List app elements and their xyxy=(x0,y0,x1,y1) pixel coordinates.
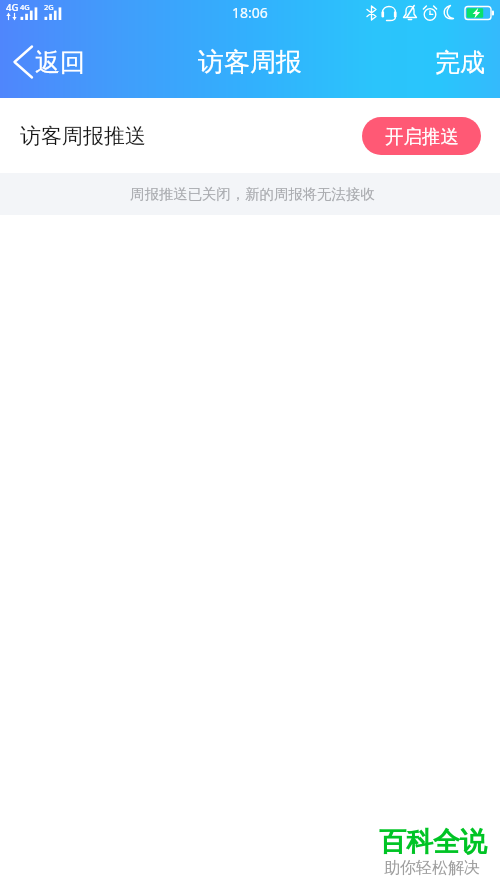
staticText: 2G xyxy=(44,2,54,12)
staticText: 访客周报推送 xyxy=(20,123,146,149)
button[interactable]: 开启推送 xyxy=(362,117,481,155)
staticText: 18:06 xyxy=(232,3,268,22)
staticText: 返回 xyxy=(35,47,85,78)
other: Back xyxy=(13,45,33,79)
button[interactable]: 完成 xyxy=(418,34,500,90)
staticText: 助你轻松解决 xyxy=(384,858,480,878)
button[interactable]: Back xyxy=(0,34,99,90)
staticText: 访客周报 xyxy=(198,46,302,79)
staticText: 百科全说 xyxy=(379,825,487,859)
staticText: 4G xyxy=(20,2,30,12)
staticText: 4G xyxy=(6,1,19,14)
staticText: 完成 xyxy=(435,47,485,78)
staticText: 周报推送已关闭，新的周报将无法接收 xyxy=(130,185,375,203)
staticText: 开启推送 xyxy=(385,125,459,148)
